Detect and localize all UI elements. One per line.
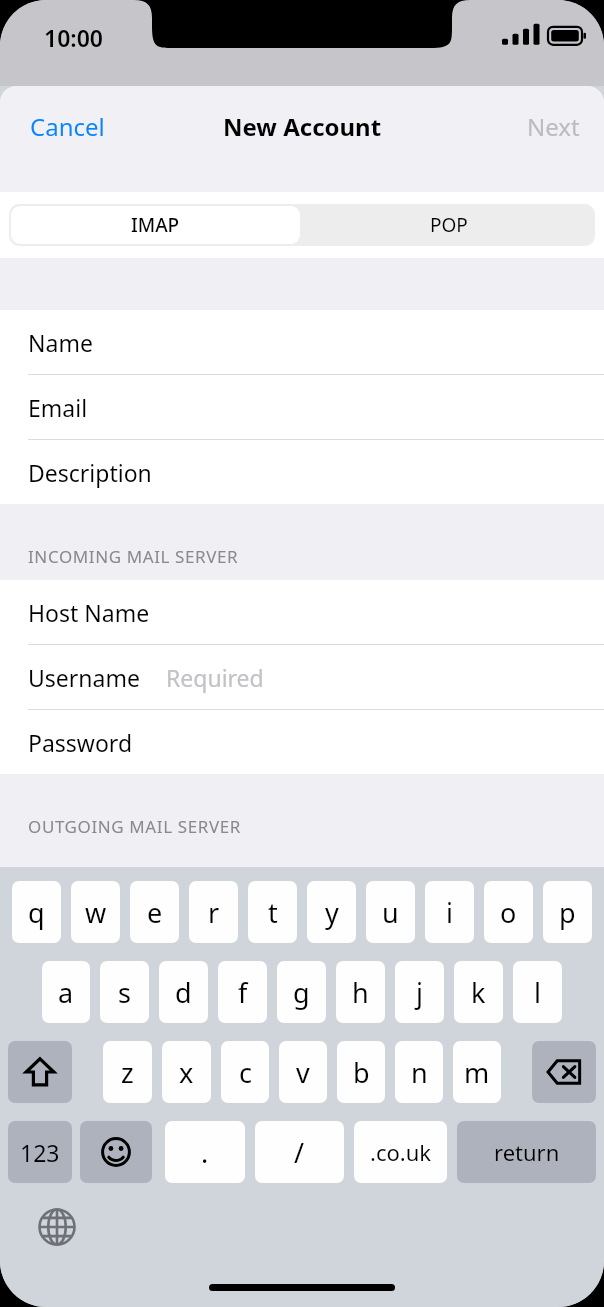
button[interactable]: Password (0, 710, 604, 774)
button[interactable]: w (71, 881, 120, 943)
button[interactable]: .co.uk (354, 1121, 447, 1183)
staticText: r (208, 894, 220, 931)
button[interactable]: Email (0, 375, 604, 439)
button[interactable]: 123 (8, 1121, 72, 1183)
staticText: e (147, 894, 163, 931)
button[interactable]: f (218, 961, 267, 1023)
button[interactable]: t (248, 881, 297, 943)
staticText: INCOMING MAIL SERVER (28, 545, 239, 568)
staticText: k (471, 974, 486, 1011)
staticText: o (500, 894, 517, 931)
button[interactable]: y (307, 881, 356, 943)
button[interactable]: b (337, 1041, 385, 1103)
button[interactable]: u (366, 881, 415, 943)
staticText: Password (28, 727, 133, 758)
button[interactable]: Shift (8, 1041, 72, 1103)
staticText: c (239, 1054, 252, 1091)
staticText: OUTGOING MAIL SERVER (28, 815, 241, 838)
button[interactable]: IMAP (11, 206, 300, 244)
button[interactable]: g (277, 961, 326, 1023)
staticText: Name (28, 327, 93, 358)
staticText: . (201, 1134, 209, 1171)
staticText: Next (527, 110, 580, 143)
button[interactable]: v (279, 1041, 327, 1103)
staticText: 10:00 (44, 22, 103, 53)
button[interactable]: i (425, 881, 474, 943)
button[interactable]: Name (0, 310, 604, 374)
staticText: a (58, 974, 74, 1011)
button[interactable]: POP (302, 204, 595, 246)
button[interactable]: Username (0, 645, 604, 709)
staticText: t (268, 894, 278, 931)
button[interactable]: z (103, 1041, 152, 1103)
staticText: IMAP (131, 212, 180, 238)
button[interactable]: Change keyboard language (29, 1199, 85, 1255)
button[interactable]: q (12, 881, 61, 943)
button[interactable]: j (395, 961, 444, 1023)
button[interactable]: l (513, 961, 562, 1023)
button[interactable]: Backspace (532, 1041, 596, 1103)
button[interactable]: . (165, 1121, 245, 1183)
staticText: / (294, 1134, 305, 1171)
button[interactable]: k (454, 961, 503, 1023)
button[interactable]: c (221, 1041, 269, 1103)
staticText: s (118, 974, 131, 1011)
button[interactable]: h (336, 961, 385, 1023)
staticText: j (416, 974, 423, 1011)
button[interactable]: n (395, 1041, 443, 1103)
staticText: Email (28, 392, 88, 423)
staticText: i (446, 894, 453, 931)
button[interactable]: Host Name (0, 580, 604, 644)
button[interactable]: m (453, 1041, 501, 1103)
staticText: Description (28, 457, 152, 488)
staticText: 123 (20, 1137, 60, 1168)
staticText: q (28, 894, 45, 931)
staticText: p (559, 894, 576, 931)
staticText: z (121, 1054, 134, 1091)
staticText: l (534, 974, 541, 1011)
button[interactable]: Next (503, 102, 604, 151)
staticText: n (411, 1054, 428, 1091)
staticText: h (352, 974, 369, 1011)
button[interactable]: return (457, 1121, 596, 1183)
staticText: w (85, 894, 107, 931)
staticText: f (238, 974, 248, 1011)
staticText: b (353, 1054, 370, 1091)
button[interactable]: a (42, 961, 90, 1023)
staticText: Required (166, 662, 264, 693)
button[interactable]: r (189, 881, 238, 943)
button[interactable]: Description (0, 440, 604, 504)
button[interactable]: Emoji (80, 1121, 152, 1183)
button[interactable]: p (543, 881, 592, 943)
button[interactable]: e (130, 881, 179, 943)
staticText: Username (28, 662, 140, 693)
button[interactable]: Cancel (0, 102, 135, 151)
staticText: return (494, 1137, 560, 1167)
staticText: y (325, 894, 339, 931)
staticText: New Account (223, 110, 382, 143)
staticText: .co.uk (370, 1137, 432, 1167)
staticText: d (175, 974, 192, 1011)
staticText: Host Name (28, 597, 150, 628)
button[interactable]: / (255, 1121, 344, 1183)
staticText: Cancel (30, 110, 105, 143)
staticText: u (382, 894, 399, 931)
staticText: x (179, 1054, 194, 1091)
button[interactable]: d (159, 961, 208, 1023)
button[interactable]: x (162, 1041, 211, 1103)
staticText: g (293, 974, 310, 1011)
button[interactable]: s (100, 961, 149, 1023)
staticText: v (296, 1054, 310, 1091)
button[interactable]: o (484, 881, 533, 943)
staticText: POP (430, 212, 468, 238)
staticText: m (464, 1054, 490, 1091)
